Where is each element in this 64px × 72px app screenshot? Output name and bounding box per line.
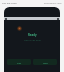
staticText: emergency app bbox=[44, 1, 62, 4]
staticText: Call the Cops bbox=[2, 1, 17, 4]
staticText: Ready bbox=[28, 33, 37, 37]
staticText: Call bbox=[17, 61, 22, 64]
button[interactable]: Text bbox=[33, 59, 57, 65]
staticText: Text bbox=[43, 61, 48, 64]
staticText: Tap to call help bbox=[24, 38, 41, 41]
button[interactable]: Call bbox=[7, 59, 31, 65]
